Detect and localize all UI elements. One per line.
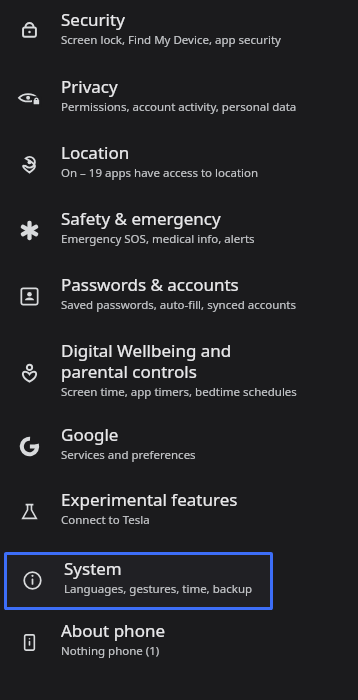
staticText: Screen lock, Find My Device, app securit… (61, 32, 281, 48)
button[interactable]: About phone (0, 617, 358, 680)
staticText: Security (61, 8, 305, 31)
staticText: Location (61, 141, 305, 164)
staticText: Languages, gestures, time, backup (64, 581, 253, 597)
button[interactable]: Passwords & accounts (0, 271, 358, 337)
button[interactable]: System (7, 555, 270, 607)
staticText: Privacy (61, 75, 305, 98)
button[interactable]: Privacy (0, 73, 358, 139)
staticText: Permissions, account activity, personal … (61, 99, 297, 115)
staticText: About phone (61, 619, 305, 642)
staticText: System (64, 557, 233, 580)
staticText: Screen time, app timers, bedtime schedul… (61, 384, 297, 400)
staticText: Google (61, 423, 305, 446)
staticText: On – 19 apps have access to location (61, 165, 259, 181)
button[interactable]: Digital Wellbeing and parental controls (0, 337, 358, 421)
button[interactable]: Security (0, 6, 358, 73)
staticText: Passwords & accounts (61, 273, 305, 296)
staticText: Saved passwords, auto-fill, synced accou… (61, 297, 297, 313)
staticText: Connect to Tesla (61, 512, 150, 528)
staticText: Nothing phone (1) (61, 643, 160, 659)
staticText: Experimental features (61, 488, 305, 511)
button[interactable]: Google (0, 421, 358, 486)
staticText: Services and preferences (61, 447, 196, 463)
button[interactable]: Experimental features (0, 486, 358, 549)
button[interactable]: Safety & emergency (0, 205, 358, 271)
staticText: Safety & emergency (61, 207, 305, 230)
button[interactable]: Location (0, 139, 358, 205)
staticText: Digital Wellbeing and parental controls (61, 339, 281, 383)
staticText: Emergency SOS, medical info, alerts (61, 231, 255, 247)
